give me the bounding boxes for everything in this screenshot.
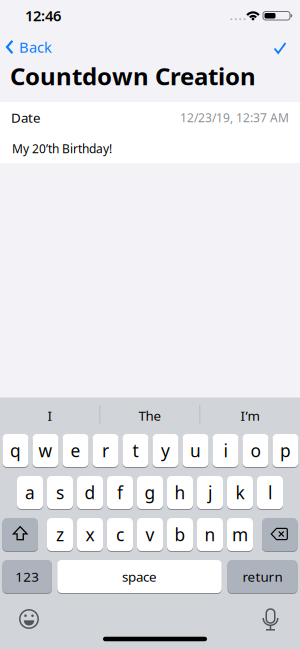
staticText: i (223, 439, 227, 462)
button[interactable]: o (242, 433, 268, 467)
button[interactable]: f (107, 475, 133, 509)
staticText: Back (19, 37, 52, 57)
staticText: f (117, 481, 123, 504)
staticText: b (174, 523, 185, 546)
staticText: The (138, 407, 161, 424)
staticText: m (232, 523, 248, 546)
staticText: e (70, 439, 80, 462)
staticText: Date (11, 109, 41, 126)
staticText: v (145, 523, 154, 546)
button[interactable]: l (257, 475, 283, 509)
button[interactable]: t (122, 433, 148, 467)
staticText: 12:46 (25, 6, 61, 25)
staticText: space (122, 568, 157, 585)
staticText: p (280, 439, 291, 462)
button[interactable]: e (62, 433, 88, 467)
staticText: r (102, 439, 109, 462)
button[interactable]: u (182, 433, 208, 467)
button[interactable] (262, 517, 298, 551)
button[interactable]: c (107, 517, 133, 551)
button[interactable]: n (197, 517, 223, 551)
button[interactable]: y (152, 433, 178, 467)
staticText: q (10, 439, 21, 462)
staticText: h (174, 481, 185, 504)
button[interactable]: return (227, 559, 297, 593)
button[interactable]: r (92, 433, 118, 467)
button[interactable]: The (105, 400, 195, 430)
staticText: 123 (15, 568, 39, 585)
button[interactable]: space (57, 559, 222, 593)
button[interactable]: I’m (205, 400, 295, 430)
staticText: 12/23/19, 12:37 AM (180, 109, 289, 125)
staticText: u (190, 439, 201, 462)
staticText: j (208, 481, 212, 504)
staticText: I’m (240, 407, 259, 424)
staticText: My 20’th Birthday! (12, 140, 112, 156)
button[interactable]: s (47, 475, 73, 509)
button[interactable]: m (227, 517, 253, 551)
button[interactable]: d (77, 475, 103, 509)
button[interactable]: z (47, 517, 73, 551)
staticText: a (25, 481, 35, 504)
staticText: z (56, 523, 64, 546)
button[interactable]: h (167, 475, 193, 509)
staticText: t (132, 439, 138, 462)
staticText: return (242, 568, 282, 585)
staticText: y (161, 439, 170, 462)
button[interactable]: j (197, 475, 223, 509)
staticText: w (38, 439, 52, 462)
staticText: c (116, 523, 124, 546)
staticText: d (84, 481, 95, 504)
button[interactable] (256, 607, 284, 631)
staticText: g (144, 481, 155, 504)
button[interactable]: w (32, 433, 58, 467)
button[interactable]: 123 (2, 559, 52, 593)
button[interactable]: I (5, 400, 95, 430)
button[interactable]: a (17, 475, 43, 509)
button[interactable]: q (2, 433, 28, 467)
staticText: o (250, 439, 260, 462)
button[interactable] (15, 605, 43, 633)
button[interactable]: i (212, 433, 238, 467)
button[interactable]: g (137, 475, 163, 509)
button[interactable]: k (227, 475, 253, 509)
button[interactable]: p (272, 433, 298, 467)
staticText: n (204, 523, 215, 546)
staticText: s (56, 481, 64, 504)
button[interactable]: v (137, 517, 163, 551)
staticText: k (235, 481, 244, 504)
button[interactable] (2, 517, 38, 551)
button[interactable]: Back (6, 36, 52, 58)
button[interactable]: Date (11, 102, 289, 132)
button[interactable] (273, 41, 287, 55)
button[interactable]: x (77, 517, 103, 551)
staticText: Countdown Creation (10, 60, 256, 92)
staticText: l (268, 481, 272, 504)
button[interactable]: b (167, 517, 193, 551)
staticText: x (85, 523, 94, 546)
staticText: I (47, 407, 52, 424)
